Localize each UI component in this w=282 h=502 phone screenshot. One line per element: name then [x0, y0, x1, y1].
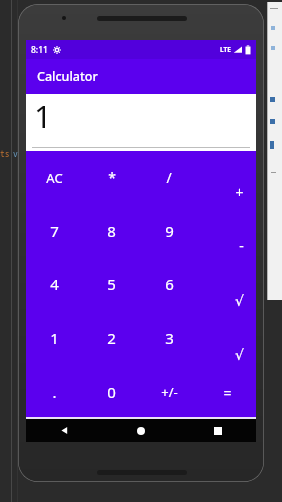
staticText: 2 [107, 328, 116, 348]
button[interactable]: √ [198, 257, 256, 311]
button[interactable]: 6 [140, 257, 198, 311]
button[interactable]: 5 [83, 257, 140, 311]
button[interactable]: Home [102, 419, 179, 442]
button[interactable]: Recent apps [179, 419, 256, 442]
staticText: * [108, 168, 116, 187]
staticText: √ [235, 347, 244, 363]
button[interactable]: 7 [26, 204, 83, 257]
button[interactable]: - [198, 204, 256, 257]
staticText: 3 [165, 328, 174, 348]
staticText: +/- [161, 383, 178, 401]
button[interactable]: 1 [26, 311, 83, 365]
button[interactable]: 8 [83, 204, 140, 257]
staticText: v [13, 148, 18, 159]
button[interactable]: 0 [83, 365, 140, 419]
button[interactable]: +/- [140, 365, 198, 419]
staticText: 8 [107, 221, 116, 241]
staticText: 1 [50, 328, 59, 348]
button[interactable]: Back [26, 419, 102, 442]
staticText: ts [0, 148, 10, 159]
button[interactable]: 9 [140, 204, 198, 257]
staticText: 5 [107, 274, 116, 294]
staticText: - [239, 236, 244, 255]
staticText: 4 [50, 274, 59, 294]
staticText: 7 [50, 221, 59, 241]
button[interactable]: * [83, 151, 140, 204]
staticText: / [166, 168, 172, 187]
staticText: AC [46, 169, 63, 187]
staticText: . [52, 382, 57, 402]
button[interactable]: Calculator [26, 59, 256, 94]
staticText: 8:11 [31, 44, 48, 56]
staticText: + [235, 183, 244, 202]
button[interactable]: 3 [140, 311, 198, 365]
staticText: = [223, 383, 232, 402]
staticText: 9 [165, 221, 174, 241]
button[interactable]: . [26, 365, 83, 419]
staticText: 6 [165, 274, 174, 294]
button[interactable]: 4 [26, 257, 83, 311]
staticText: 0 [107, 382, 116, 402]
staticText: Calculator [37, 68, 98, 85]
staticText: LTE [220, 45, 231, 54]
button[interactable]: / [140, 151, 198, 204]
button[interactable]: = [198, 365, 256, 419]
staticText: 1 [34, 95, 52, 137]
staticText: √ [235, 293, 244, 309]
button[interactable]: + [198, 151, 256, 204]
button[interactable]: √ [198, 311, 256, 365]
button[interactable]: AC [26, 151, 83, 204]
button[interactable]: 2 [83, 311, 140, 365]
